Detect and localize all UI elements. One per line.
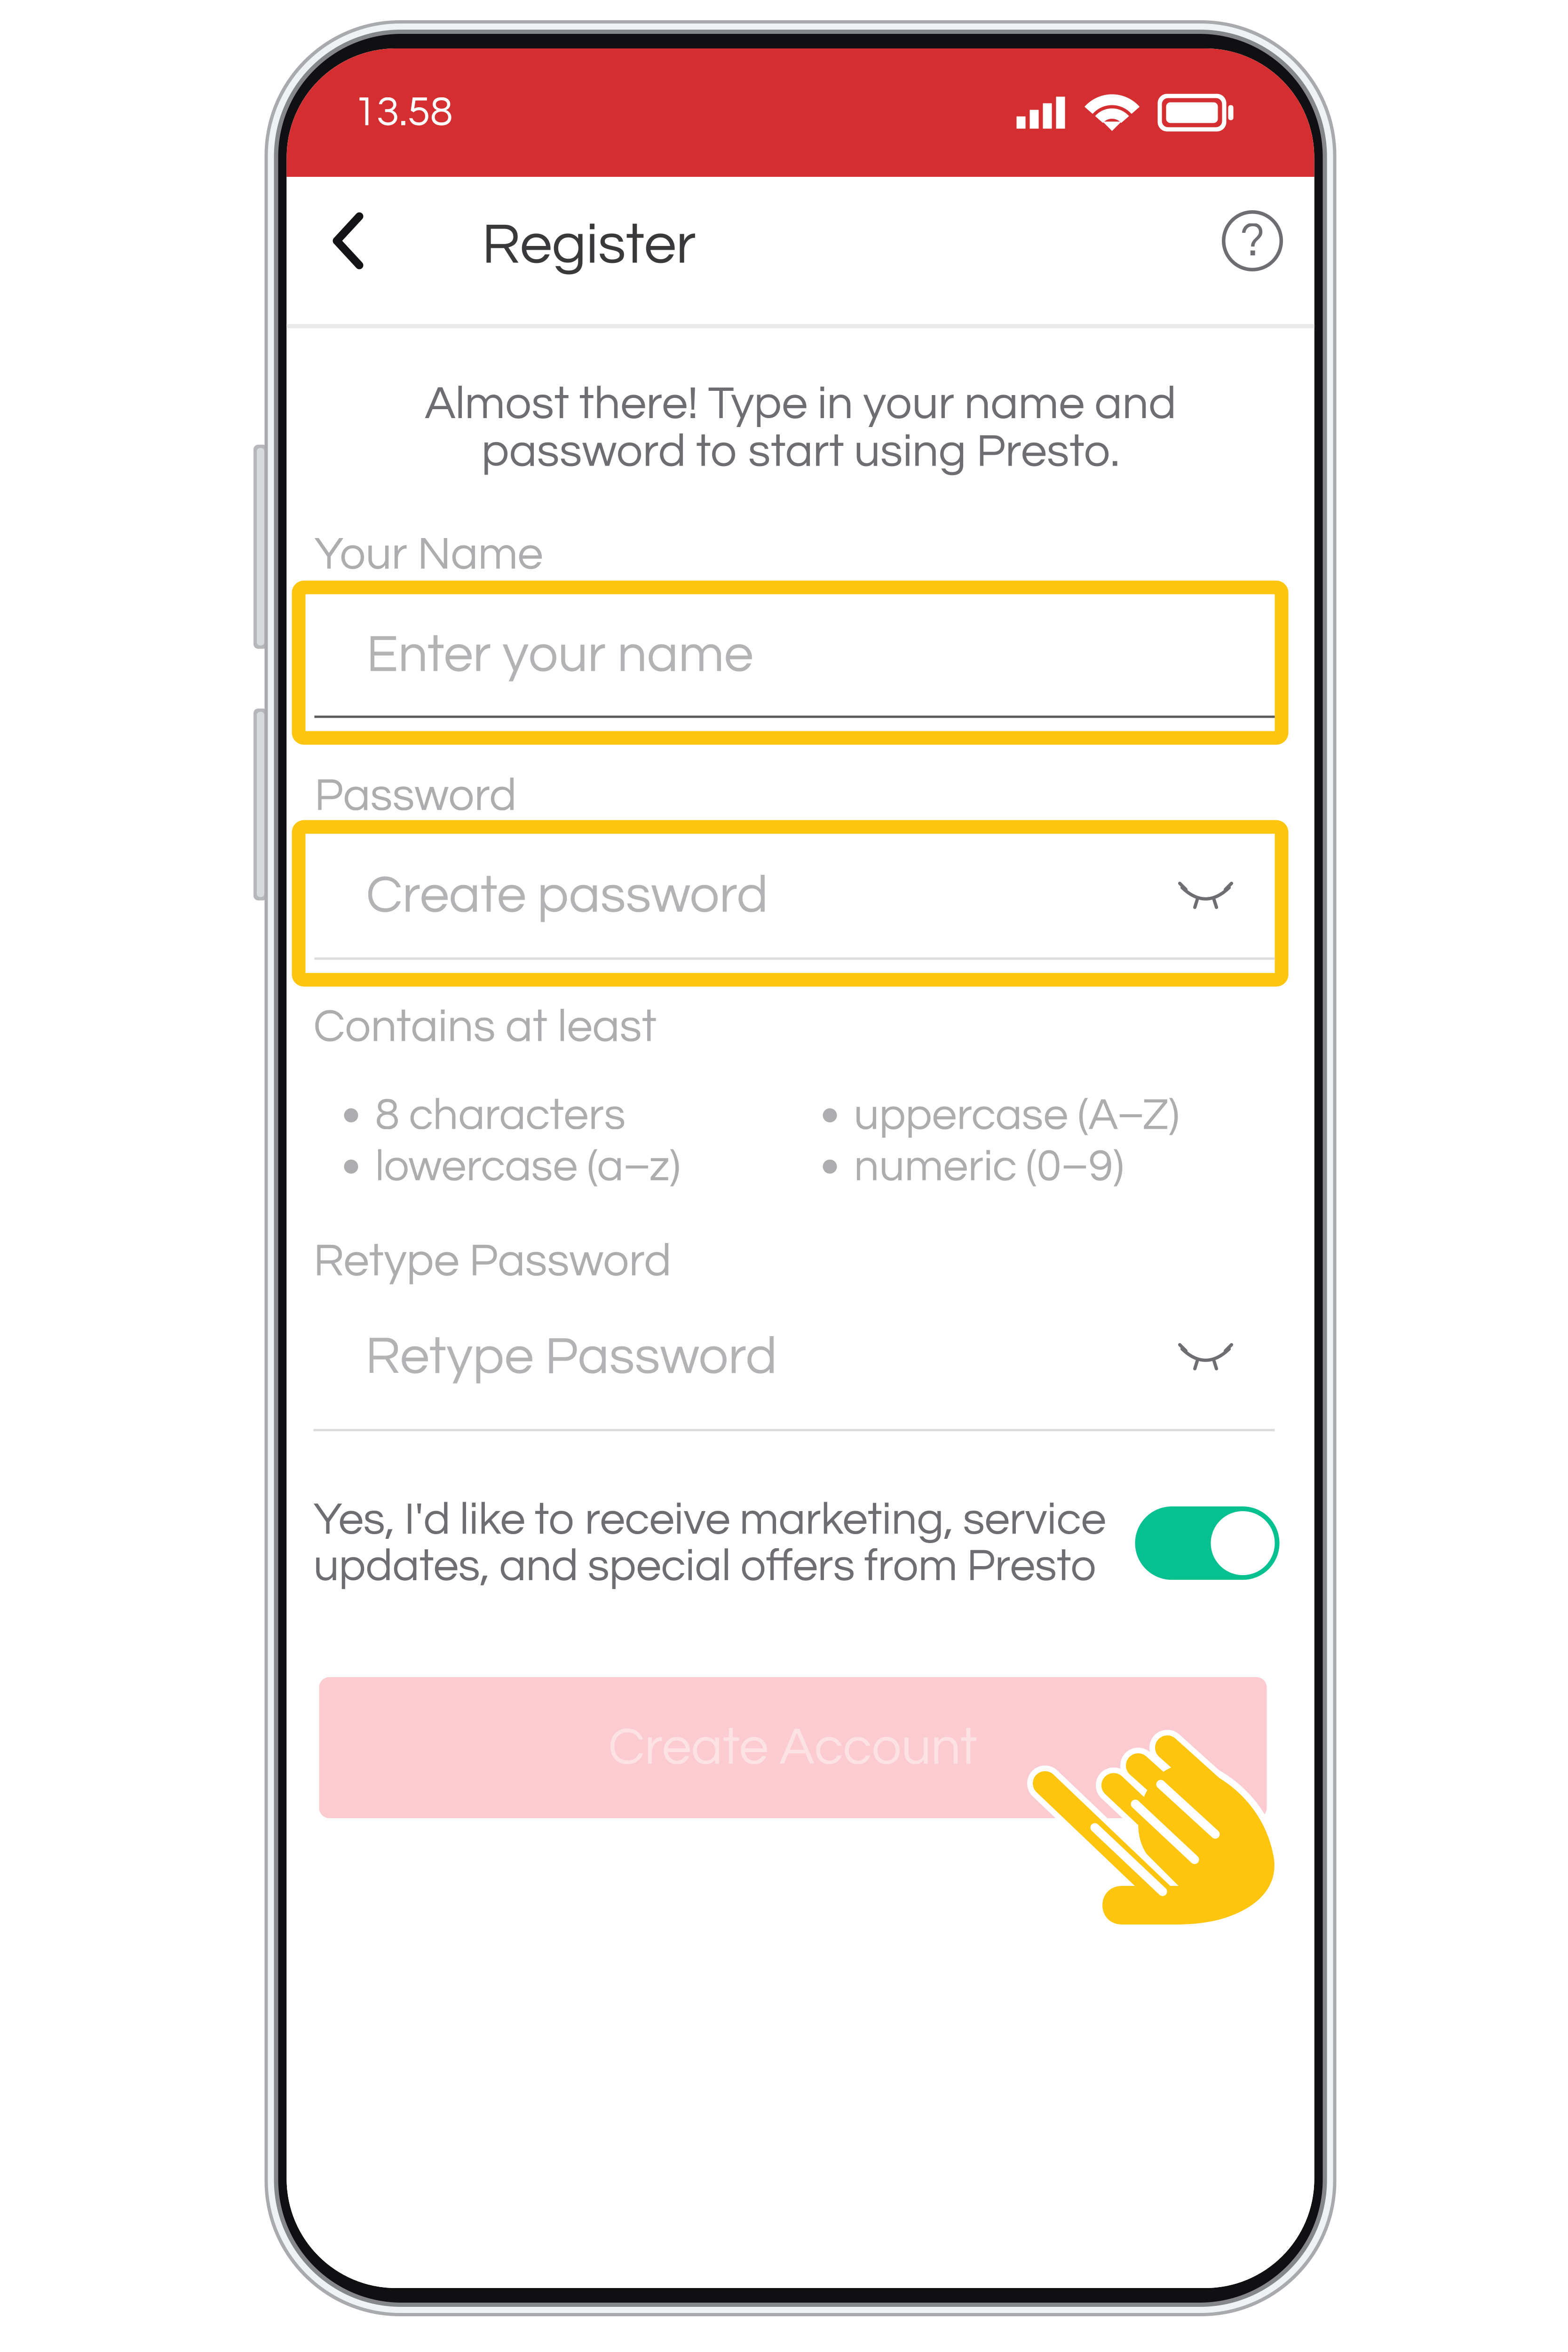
staticText: uppercase (A–Z) [854,1092,1179,1138]
staticText: Create Account [608,1721,978,1775]
staticText: Contains at least [313,1004,657,1051]
staticText: Retype Password [365,1330,777,1384]
button[interactable]: Receive marketing updates [1135,1506,1279,1580]
button[interactable]: Create Account [319,1677,1267,1818]
staticText: Password [314,772,517,820]
staticText: lowercase (a–z) [375,1144,680,1190]
staticText: Yes, I'd like to receive marketing, serv… [313,1497,1106,1590]
staticText: Retype Password [313,1238,671,1285]
staticText: numeric (0–9) [854,1144,1124,1190]
staticText: Almost there! Type in your name and pass… [425,380,1176,476]
staticText: 8 characters [375,1092,626,1138]
button[interactable]: Help [1191,177,1314,305]
staticText: Create password [366,868,768,923]
staticText: 13.58 [354,91,453,134]
staticText: Your Name [314,531,543,578]
staticText: Enter your name [366,628,753,682]
staticText: Register [482,215,696,275]
button[interactable]: Back [287,177,482,305]
staticText: ? [1240,216,1265,265]
